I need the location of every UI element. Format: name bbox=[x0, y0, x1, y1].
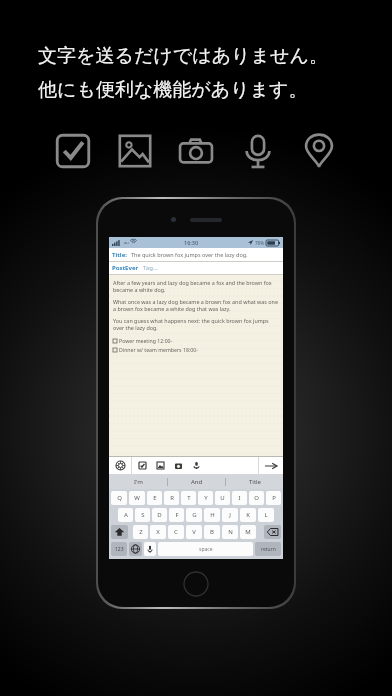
staticText: After a few years and lazy dog became a … bbox=[113, 279, 279, 293]
button[interactable]: space bbox=[158, 542, 253, 556]
staticText: E bbox=[153, 494, 157, 502]
staticText: B bbox=[210, 528, 214, 536]
button[interactable]: D bbox=[152, 508, 167, 522]
button[interactable]: return bbox=[255, 542, 281, 556]
button[interactable]: S bbox=[135, 508, 150, 522]
button[interactable]: O bbox=[249, 491, 264, 505]
staticText: 16:30 bbox=[184, 239, 199, 246]
button[interactable]: Settings bbox=[109, 457, 131, 474]
button[interactable]: P bbox=[266, 491, 281, 505]
staticText: 123 bbox=[115, 546, 124, 553]
button[interactable]: V bbox=[186, 525, 202, 539]
staticText: J bbox=[229, 511, 231, 519]
button[interactable]: J bbox=[222, 508, 238, 522]
button[interactable]: Checklist bbox=[54, 132, 92, 170]
staticText: Z bbox=[139, 528, 143, 536]
button[interactable]: N bbox=[222, 525, 238, 539]
staticText: D bbox=[157, 511, 162, 519]
button[interactable]: H bbox=[204, 508, 220, 522]
button[interactable]: T bbox=[181, 491, 196, 505]
staticText: C bbox=[174, 528, 178, 536]
button[interactable]: W bbox=[129, 491, 145, 505]
button[interactable]: F bbox=[169, 508, 184, 522]
button[interactable]: K bbox=[240, 508, 256, 522]
staticText: P bbox=[272, 494, 276, 502]
staticText: L bbox=[264, 511, 268, 519]
staticText: X bbox=[156, 528, 160, 536]
staticText: K bbox=[246, 511, 250, 519]
staticText: I'm bbox=[134, 478, 143, 486]
button[interactable]: G bbox=[186, 508, 202, 522]
staticText: Dinner w/ team members 18:00- bbox=[119, 346, 198, 353]
button[interactable]: C bbox=[168, 525, 184, 539]
button[interactable]: Camera bbox=[177, 132, 215, 170]
staticText: R bbox=[170, 494, 174, 502]
staticText: PostEver bbox=[112, 264, 139, 272]
button[interactable]: Photo bbox=[155, 460, 166, 471]
staticText: And bbox=[191, 478, 203, 486]
staticText: T bbox=[187, 494, 191, 502]
button[interactable]: Change keyboard bbox=[129, 542, 142, 556]
button[interactable]: Photo bbox=[116, 132, 154, 170]
button[interactable]: Y bbox=[198, 491, 213, 505]
staticText: You can guess what happens next: the qui… bbox=[113, 317, 279, 331]
staticText: S bbox=[141, 511, 145, 519]
button[interactable]: Dictate bbox=[144, 542, 156, 556]
button[interactable]: B bbox=[204, 525, 220, 539]
staticText: Tag… bbox=[143, 264, 158, 272]
button[interactable]: Z bbox=[133, 525, 148, 539]
button[interactable]: I bbox=[232, 491, 247, 505]
button[interactable]: R bbox=[164, 491, 179, 505]
staticText: G bbox=[192, 511, 197, 519]
staticText: H bbox=[210, 511, 215, 519]
staticText: Title: bbox=[112, 251, 127, 259]
button[interactable]: L bbox=[258, 508, 274, 522]
button[interactable]: Checklist bbox=[137, 460, 148, 471]
button[interactable]: PostEver bbox=[112, 262, 280, 274]
button[interactable]: U bbox=[215, 491, 230, 505]
button[interactable]: M bbox=[240, 525, 256, 539]
button[interactable]: And bbox=[168, 474, 225, 489]
staticText: N bbox=[228, 528, 233, 536]
button[interactable]: Voice bbox=[239, 132, 277, 170]
staticText: space bbox=[199, 546, 213, 553]
button[interactable]: Title bbox=[226, 474, 283, 489]
staticText: I bbox=[238, 494, 241, 502]
button[interactable]: Shift bbox=[111, 525, 128, 539]
staticText: au bbox=[124, 240, 129, 245]
button[interactable]: E bbox=[147, 491, 162, 505]
button[interactable]: Power meeting 12:00- bbox=[113, 337, 173, 344]
button[interactable]: 123 bbox=[111, 542, 127, 556]
button[interactable]: Q bbox=[111, 491, 127, 505]
button[interactable]: Camera bbox=[173, 460, 184, 471]
staticText: O bbox=[254, 494, 259, 502]
button[interactable]: X bbox=[150, 525, 166, 539]
staticText: W bbox=[134, 494, 140, 502]
button[interactable]: Location bbox=[300, 132, 338, 170]
staticText: V bbox=[192, 528, 196, 536]
button[interactable]: Voice bbox=[191, 460, 202, 471]
staticText: What once was a lazy dog became a brown … bbox=[113, 298, 279, 312]
staticText: Power meeting 12:00- bbox=[119, 337, 173, 344]
staticText: M bbox=[245, 528, 251, 536]
staticText: 他にも便利な機能があります。 bbox=[38, 78, 392, 102]
button[interactable]: Dinner w/ team members 18:00- bbox=[113, 346, 198, 353]
button[interactable]: Backspace bbox=[264, 525, 281, 539]
button[interactable]: I'm bbox=[109, 474, 167, 489]
button[interactable]: A bbox=[118, 508, 133, 522]
staticText: A bbox=[124, 511, 128, 519]
staticText: Q bbox=[117, 494, 122, 502]
staticText: U bbox=[220, 494, 225, 502]
staticText: F bbox=[175, 511, 179, 519]
staticText: Y bbox=[204, 494, 208, 502]
staticText: 78% bbox=[255, 240, 264, 246]
staticText: Title bbox=[249, 478, 261, 486]
button[interactable]: Send bbox=[259, 457, 283, 474]
staticText: The quick brown fox jumps over the lazy … bbox=[131, 251, 248, 258]
staticText: return bbox=[261, 546, 276, 553]
staticText: 文字を送るだけではありません。 bbox=[38, 44, 392, 68]
